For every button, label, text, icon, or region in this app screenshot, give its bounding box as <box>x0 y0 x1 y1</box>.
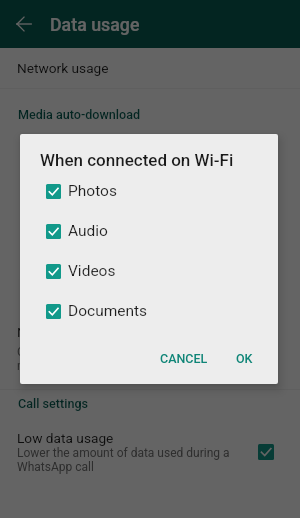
staticText: Network settings <box>17 324 121 340</box>
staticText: Videos <box>68 262 116 280</box>
staticText: Low data usage <box>17 430 114 446</box>
staticText: Lower the amount of data used during a W… <box>17 446 250 474</box>
staticText: Data usage <box>50 14 140 35</box>
button[interactable]: Network usage <box>0 52 300 84</box>
staticText: All media <box>22 220 72 234</box>
button[interactable]: Media auto-download <box>18 107 141 122</box>
button[interactable]: Videos <box>20 257 278 285</box>
staticText: Documents <box>68 302 148 320</box>
button[interactable]: When connected on Wi-Fi <box>0 194 300 242</box>
staticText: Network usage <box>17 60 109 76</box>
button[interactable]: Audio <box>20 217 278 245</box>
button[interactable]: When roaming <box>0 258 300 306</box>
button[interactable]: Back <box>0 0 48 48</box>
button[interactable]: OK <box>231 347 258 370</box>
button[interactable]: Photos <box>20 177 278 205</box>
button[interactable]: Low data usage <box>0 427 300 484</box>
staticText: OK <box>236 351 253 366</box>
staticText: Control how much data is used for calls … <box>17 345 280 373</box>
button[interactable]: Documents <box>20 297 278 325</box>
staticText: Audio <box>68 222 108 240</box>
button[interactable]: Call settings <box>18 396 89 411</box>
staticText: Photos <box>68 182 117 200</box>
staticText: When roaming <box>22 266 111 282</box>
button[interactable]: CANCEL <box>155 347 213 370</box>
staticText: When connected on Wi-Fi <box>40 150 234 170</box>
staticText: CANCEL <box>160 351 208 366</box>
button[interactable]: Network settings <box>0 322 300 383</box>
button[interactable]: When using mobile data <box>0 130 300 178</box>
staticText: No media <box>22 156 74 170</box>
